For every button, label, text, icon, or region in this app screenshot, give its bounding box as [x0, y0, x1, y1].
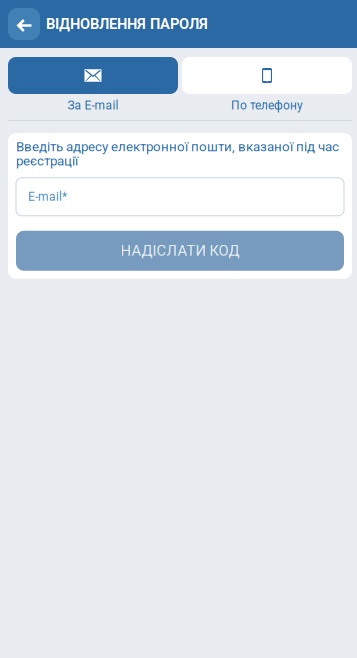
staticText: E-mail*: [28, 190, 67, 204]
button[interactable]: НАДІСЛАТИ КОД: [16, 231, 344, 271]
button[interactable]: По телефону: [182, 57, 352, 115]
staticText: По телефону: [231, 98, 303, 113]
button[interactable]: Back: [8, 8, 40, 40]
staticText: За E-mail: [67, 98, 118, 113]
staticText: НАДІСЛАТИ КОД: [120, 242, 239, 259]
button[interactable]: За E-mail: [8, 57, 178, 115]
staticText: Введіть адресу електронної пошти, вказан…: [16, 139, 339, 169]
staticText: ВІДНОВЛЕННЯ ПАРОЛЯ: [46, 15, 208, 33]
